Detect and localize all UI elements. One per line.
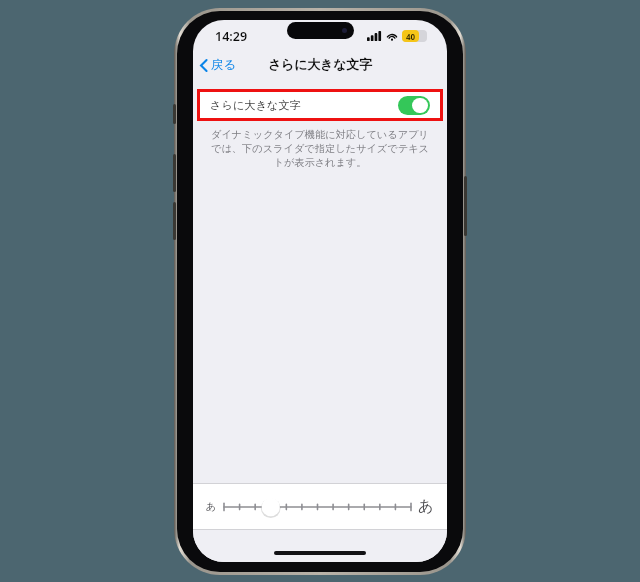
staticText: 14:29 xyxy=(215,28,248,45)
staticText: 戻る xyxy=(211,57,237,73)
staticText: さらに大きな文字 xyxy=(268,57,372,73)
button[interactable]: さらに大きな文字 xyxy=(200,92,440,118)
button[interactable]: Text size slider xyxy=(224,484,411,529)
button[interactable]: 戻る xyxy=(193,53,245,77)
staticText: あ xyxy=(206,500,217,513)
other: Larger Text toggle, on xyxy=(398,96,430,115)
staticText: さらに大きな文字 xyxy=(210,98,301,112)
staticText: 40 xyxy=(406,31,416,42)
staticText: あ xyxy=(418,497,434,516)
staticText: ダイナミックタイプ機能に対応しているアプリでは、下のスライダで指定したサイズでテ… xyxy=(206,128,434,169)
